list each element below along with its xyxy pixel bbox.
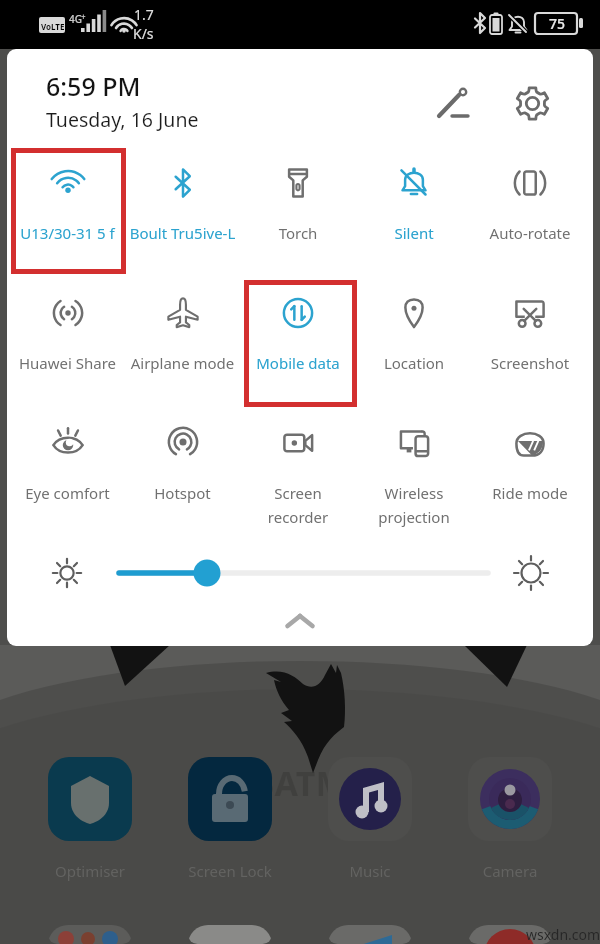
button[interactable]: Ride mode bbox=[472, 389, 588, 519]
staticText: Ride mode bbox=[472, 483, 588, 503]
staticText: Hotspot bbox=[125, 483, 240, 503]
button[interactable]: Camera bbox=[468, 757, 552, 882]
staticText: Torch bbox=[240, 223, 356, 243]
button[interactable]: Boult Tru5ive-L bbox=[125, 129, 240, 259]
button[interactable]: Mobile data bbox=[240, 259, 356, 389]
staticText: K/s bbox=[133, 24, 154, 43]
staticText: Music bbox=[328, 861, 412, 881]
staticText: 1.7 bbox=[134, 5, 154, 24]
button[interactable]: Decrease brightness bbox=[45, 551, 89, 595]
button[interactable]: Torch bbox=[240, 129, 356, 259]
staticText: Tuesday, 16 June bbox=[46, 106, 199, 133]
staticText: Boult Tru5ive-L bbox=[125, 223, 240, 243]
button[interactable]: U13/30-31 5 f bbox=[10, 129, 125, 259]
button[interactable]: Auto-rotate bbox=[472, 129, 588, 259]
staticText: 75 bbox=[549, 14, 566, 33]
button[interactable]: Silent bbox=[356, 129, 472, 259]
button[interactable]: Brightness bbox=[111, 548, 495, 598]
button[interactable]: Screen recorder bbox=[240, 389, 356, 519]
staticText: wsxdn.com bbox=[526, 925, 600, 944]
staticText: Screen Lock bbox=[188, 861, 272, 881]
button[interactable]: Expand bbox=[255, 601, 345, 641]
button[interactable]: Optimiser bbox=[48, 757, 132, 882]
button[interactable]: Screen Lock bbox=[188, 757, 272, 882]
staticText: U13/30-31 5 f bbox=[10, 223, 125, 243]
button[interactable]: Airplane mode bbox=[125, 259, 240, 389]
staticText: Huawei Share bbox=[10, 353, 125, 373]
button[interactable]: Music bbox=[328, 757, 412, 882]
staticText: VoLTE bbox=[41, 21, 65, 32]
button[interactable]: Eye comfort bbox=[10, 389, 125, 519]
staticText: Eye comfort bbox=[10, 483, 125, 503]
staticText: Wireless projection bbox=[364, 483, 464, 527]
button[interactable]: Wireless projection bbox=[356, 389, 472, 519]
staticText: Mobile data bbox=[240, 353, 356, 373]
button[interactable]: Edit bbox=[429, 74, 484, 129]
button[interactable]: Hotspot bbox=[125, 389, 240, 519]
staticText: Screen recorder bbox=[248, 483, 348, 527]
staticText: 4G bbox=[69, 12, 82, 26]
staticText: BATMAN bbox=[252, 760, 399, 806]
staticText: Location bbox=[356, 353, 472, 373]
button[interactable]: Settings bbox=[505, 76, 560, 131]
button[interactable]: Screenshot bbox=[472, 259, 588, 389]
staticText: + bbox=[81, 11, 86, 22]
staticText: Silent bbox=[356, 223, 472, 243]
staticText: Auto-rotate bbox=[472, 223, 588, 243]
staticText: Screenshot bbox=[472, 353, 588, 373]
staticText: Optimiser bbox=[48, 861, 132, 881]
button[interactable]: Huawei Share bbox=[10, 259, 125, 389]
staticText: Camera bbox=[468, 861, 552, 881]
button[interactable]: Increase brightness bbox=[509, 551, 553, 595]
staticText: 6:59 PM bbox=[46, 69, 141, 103]
staticText: Airplane mode bbox=[125, 353, 240, 373]
button[interactable]: Location bbox=[356, 259, 472, 389]
